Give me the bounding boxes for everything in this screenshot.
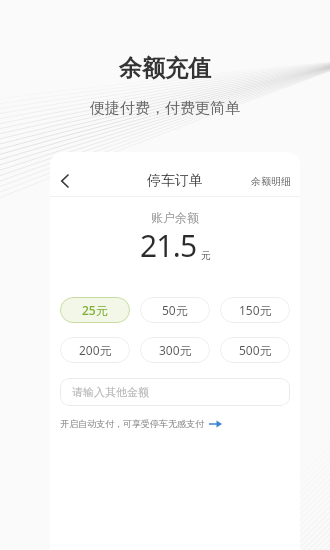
- staticText: 元: [201, 249, 211, 262]
- staticText: 150元: [239, 302, 272, 318]
- staticText: 停车订单: [147, 172, 203, 190]
- button[interactable]: 请输入其他金额: [60, 378, 290, 406]
- staticText: 便捷付费，付费更简单: [0, 99, 330, 118]
- button[interactable]: 余额明细: [242, 167, 300, 196]
- staticText: 账户余额: [50, 210, 300, 225]
- staticText: 余额充值: [0, 54, 330, 83]
- button[interactable]: 150元: [220, 297, 290, 323]
- staticText: 300元: [159, 342, 192, 358]
- staticText: 50元: [162, 302, 188, 318]
- button[interactable]: 200元: [60, 337, 130, 363]
- staticText: 21.5: [140, 225, 197, 266]
- staticText: 500元: [239, 342, 272, 358]
- button[interactable]: 50元: [140, 297, 210, 323]
- button[interactable]: 25元: [60, 297, 130, 323]
- button[interactable]: 500元: [220, 337, 290, 363]
- button[interactable]: 300元: [140, 337, 210, 363]
- staticText: 25元: [82, 302, 108, 318]
- staticText: 开启自动支付，可享受停车无感支付: [60, 418, 204, 429]
- staticText: 200元: [79, 342, 112, 358]
- staticText: 余额明细: [251, 175, 291, 188]
- staticText: 请输入其他金额: [72, 385, 149, 399]
- button[interactable]: Back: [50, 166, 79, 196]
